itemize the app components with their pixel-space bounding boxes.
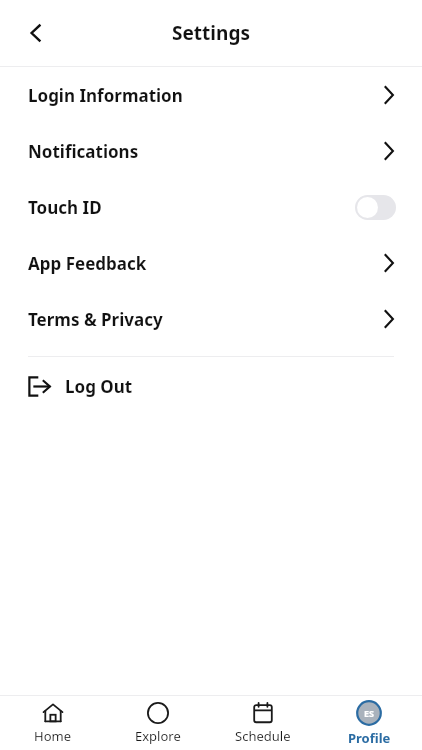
staticText: Explore xyxy=(135,727,181,745)
staticText: Profile xyxy=(348,729,391,747)
button[interactable]: App Feedback xyxy=(0,235,422,291)
button[interactable]: Terms & Privacy xyxy=(0,291,422,347)
staticText: Home xyxy=(34,727,71,745)
staticText: Notifications xyxy=(28,140,139,163)
button[interactable]: Notifications xyxy=(0,123,422,179)
button[interactable]: Login Information xyxy=(0,67,422,123)
button[interactable]: Explore xyxy=(105,696,210,750)
staticText: Terms & Privacy xyxy=(28,308,163,331)
staticText: App Feedback xyxy=(28,252,147,275)
staticText: Schedule xyxy=(235,727,291,745)
button[interactable]: ES xyxy=(316,696,422,750)
staticText: Login Information xyxy=(28,84,183,107)
staticText: ES xyxy=(364,707,374,719)
button[interactable]: Home xyxy=(0,696,105,750)
button[interactable]: Touch ID xyxy=(0,179,422,235)
button[interactable]: Log Out xyxy=(0,357,422,415)
button[interactable]: Schedule xyxy=(210,696,316,750)
staticText: Log Out xyxy=(65,375,133,398)
staticText: Settings xyxy=(172,20,250,46)
button[interactable]: Touch ID toggle xyxy=(355,195,396,220)
button[interactable]: Back xyxy=(14,11,58,55)
staticText: Touch ID xyxy=(28,196,102,219)
